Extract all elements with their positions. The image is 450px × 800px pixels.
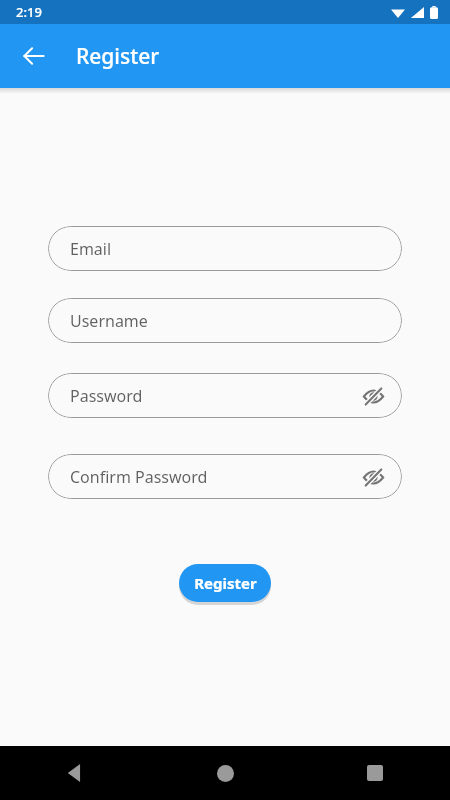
staticText: 2:19 (16, 3, 42, 21)
staticText: Register (194, 573, 257, 593)
button[interactable]: Password (48, 373, 402, 418)
button[interactable]: Register (179, 564, 271, 602)
button[interactable]: Recents (300, 746, 450, 800)
button[interactable]: Email (48, 226, 402, 271)
button[interactable]: Toggle password visibility (358, 462, 388, 492)
button[interactable]: Username (48, 298, 402, 343)
button[interactable]: Confirm Password (48, 454, 402, 499)
button[interactable]: Back (0, 746, 150, 800)
staticText: Password (70, 385, 143, 407)
staticText: Register (76, 42, 160, 71)
button[interactable]: Back (10, 32, 58, 80)
button[interactable]: Home (150, 746, 300, 800)
staticText: Username (70, 310, 148, 332)
staticText: Email (70, 238, 112, 260)
staticText: Confirm Password (70, 466, 208, 488)
button[interactable]: Toggle password visibility (358, 381, 388, 411)
